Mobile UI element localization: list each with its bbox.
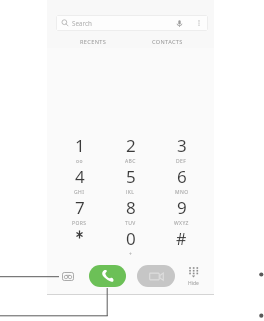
other: Search [61, 19, 69, 27]
button[interactable]: Video call [137, 265, 175, 287]
staticText: 6 [177, 165, 187, 188]
other: Voice search [175, 19, 184, 28]
button[interactable]: Search [56, 15, 208, 31]
staticText: PQRS [72, 220, 87, 225]
button[interactable]: 5 [105, 163, 156, 194]
staticText: CONTACTS [152, 38, 183, 46]
button[interactable]: RECENTS [57, 35, 130, 49]
staticText: 2 [126, 134, 136, 157]
button[interactable]: # [156, 225, 207, 256]
button[interactable]: 7 [54, 194, 105, 225]
button[interactable]: 1 [54, 132, 105, 163]
staticText: ABC [125, 158, 136, 163]
button[interactable]: 9 [156, 194, 207, 225]
staticText: 4 [75, 165, 85, 188]
staticText: 5 [126, 165, 136, 188]
button[interactable]: CONTACTS [130, 35, 204, 49]
other: More options [195, 19, 203, 27]
staticText: 3 [177, 134, 187, 157]
button[interactable]: Voicemail [62, 272, 74, 281]
staticText: MNO [175, 189, 189, 194]
button[interactable]: Hide [185, 266, 202, 287]
staticText: JKL [126, 189, 135, 194]
button[interactable]: 0 [105, 225, 156, 256]
staticText: TUV [125, 220, 136, 225]
staticText: 1 [75, 134, 85, 157]
staticText: GHI [74, 189, 85, 194]
staticText: + [129, 251, 133, 256]
button[interactable] [54, 225, 105, 256]
button[interactable]: 2 [105, 132, 156, 163]
staticText: RECENTS [80, 38, 107, 46]
staticText: WXYZ [174, 220, 189, 225]
staticText: 0 [126, 227, 136, 250]
staticText: Search [72, 19, 92, 28]
staticText: 7 [75, 196, 85, 219]
staticText: Hide [188, 280, 199, 287]
staticText: oo [76, 158, 83, 163]
staticText: 8 [126, 196, 136, 219]
button[interactable]: Call [89, 265, 126, 287]
button[interactable]: 4 [54, 163, 105, 194]
staticText: 9 [177, 196, 187, 219]
button[interactable]: 6 [156, 163, 207, 194]
staticText: DEF [176, 158, 187, 163]
button[interactable]: 8 [105, 194, 156, 225]
staticText: # [176, 228, 187, 250]
button[interactable]: 3 [156, 132, 207, 163]
